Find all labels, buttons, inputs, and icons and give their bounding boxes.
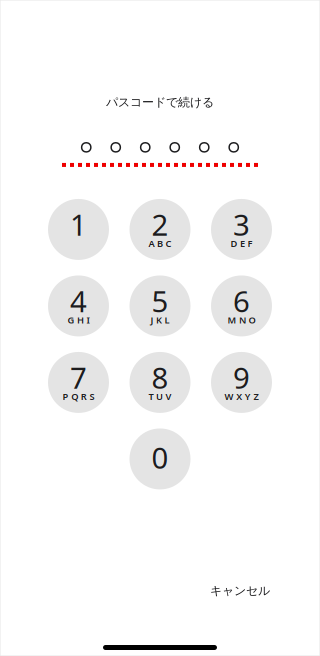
- staticText: JKL: [150, 314, 170, 326]
- staticText: 5: [151, 281, 168, 320]
- staticText: 9: [233, 358, 250, 397]
- staticText: 7: [70, 358, 87, 397]
- button[interactable]: 4: [48, 275, 109, 336]
- button[interactable]: 8: [129, 352, 190, 413]
- staticText: 2: [151, 205, 168, 244]
- button[interactable]: 7: [48, 352, 109, 413]
- staticText: MNO: [227, 314, 256, 326]
- button[interactable]: キャンセル: [210, 583, 270, 598]
- button[interactable]: 3: [211, 199, 272, 260]
- button[interactable]: 9: [211, 352, 272, 413]
- staticText: 8: [151, 358, 168, 397]
- button[interactable]: 2: [129, 199, 190, 260]
- staticText: TUV: [148, 390, 172, 403]
- staticText: キャンセル: [210, 583, 270, 598]
- staticText: 0: [151, 438, 168, 477]
- staticText: 4: [70, 281, 87, 320]
- staticText: PQRS: [63, 390, 94, 403]
- staticText: WXYZ: [225, 390, 258, 403]
- button[interactable]: 0: [129, 428, 190, 489]
- staticText: 6: [233, 281, 250, 320]
- button[interactable]: 1: [48, 199, 109, 260]
- staticText: 3: [233, 205, 250, 244]
- staticText: ABC: [148, 237, 172, 250]
- staticText: DEF: [230, 237, 253, 250]
- staticText: GHI: [67, 314, 90, 326]
- staticText: 1: [70, 205, 87, 244]
- button[interactable]: 5: [129, 275, 190, 336]
- button[interactable]: 6: [211, 275, 272, 336]
- staticText: パスコードで続ける: [106, 95, 214, 110]
